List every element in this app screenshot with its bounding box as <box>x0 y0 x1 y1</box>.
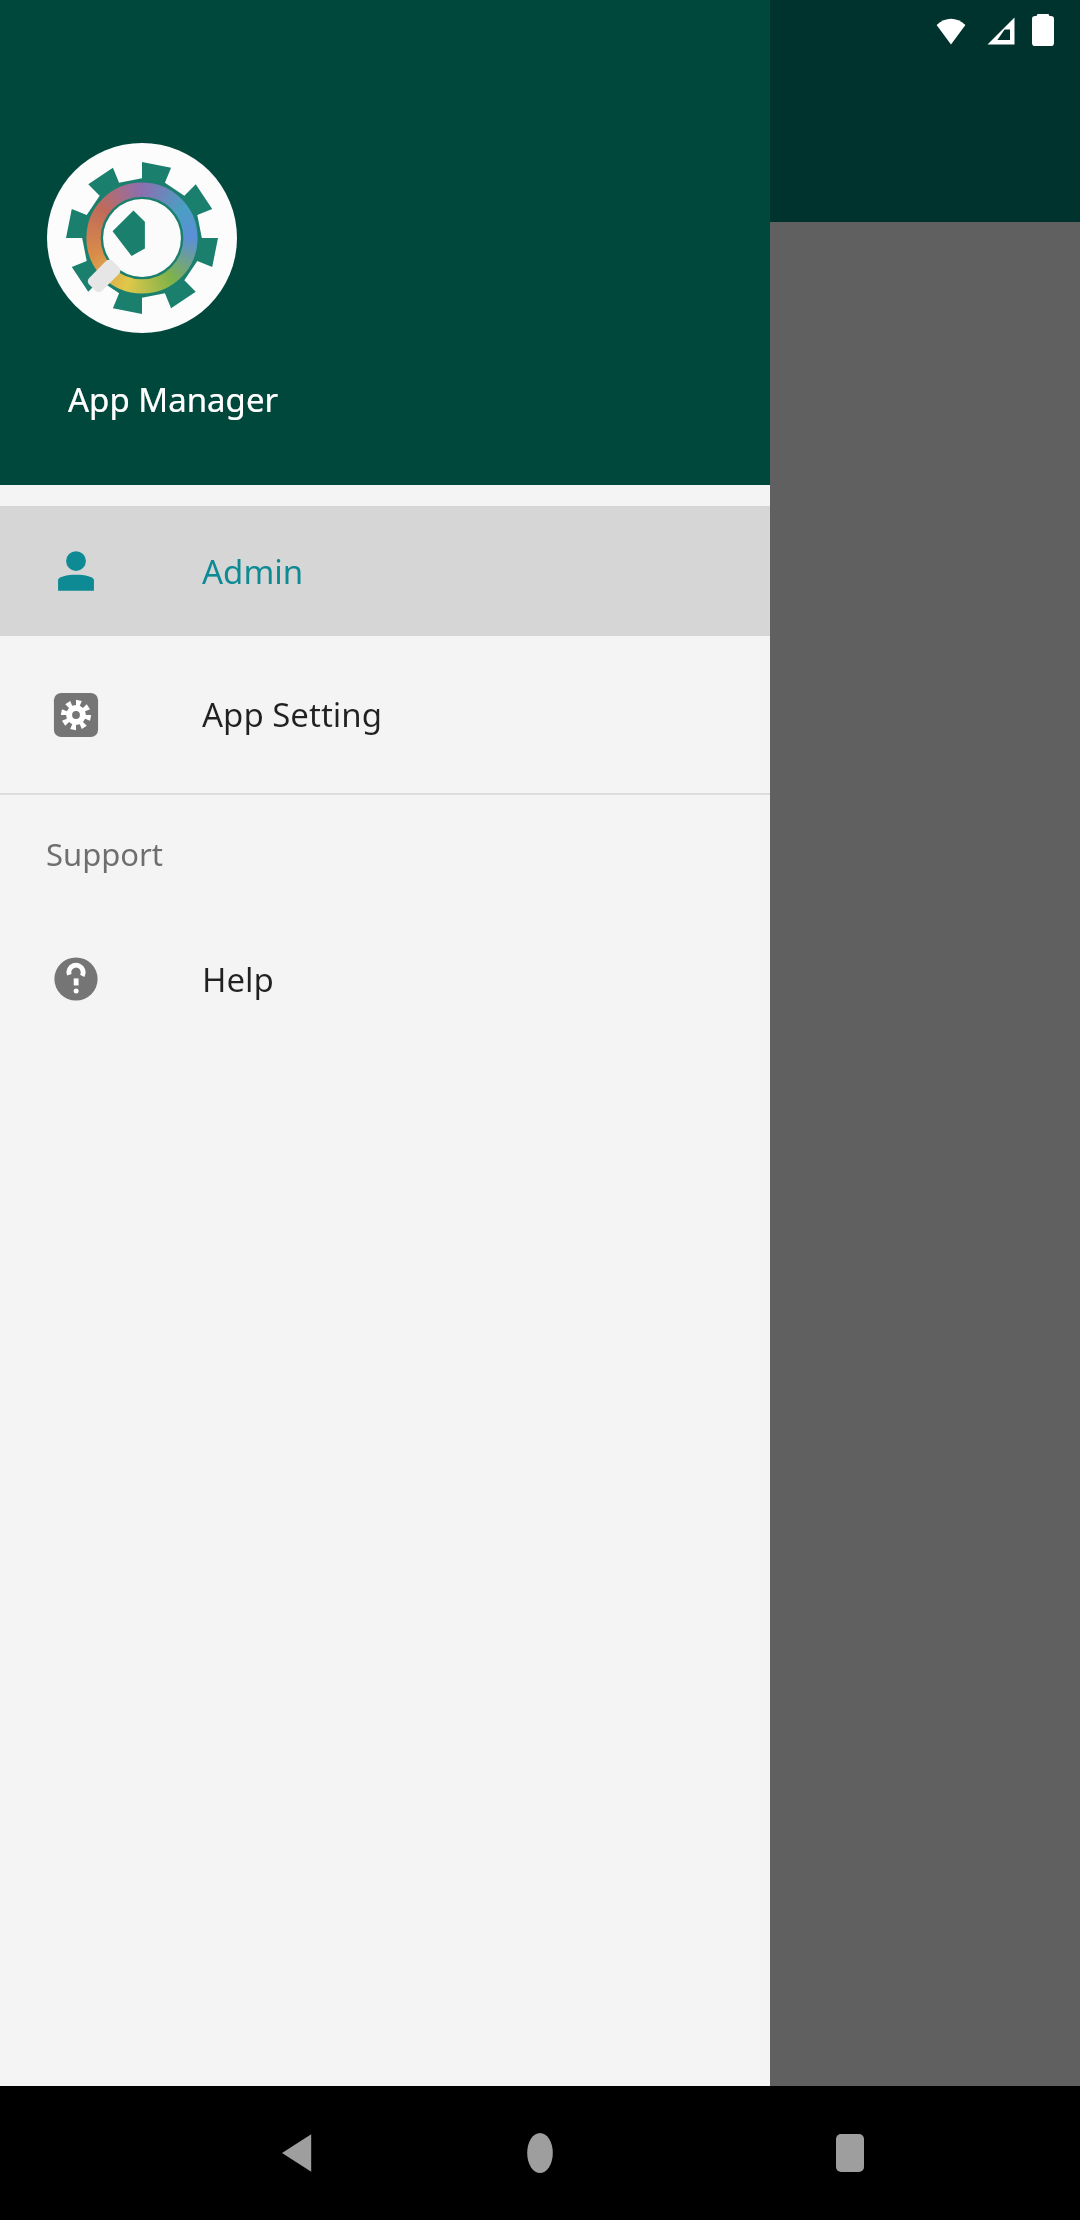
staticText: Support <box>46 833 164 875</box>
button[interactable]: Back <box>270 2123 330 2183</box>
staticText: App Manager <box>68 377 279 422</box>
staticText: Admin <box>202 549 304 594</box>
staticText: App Setting <box>202 692 383 737</box>
button[interactable]: Home <box>510 2123 570 2183</box>
staticText: Help <box>202 957 274 1002</box>
button[interactable]: Recent apps <box>820 2123 880 2183</box>
button[interactable]: Help <box>0 913 770 1045</box>
button[interactable]: App Setting <box>0 636 770 793</box>
button[interactable]: Admin <box>0 506 770 636</box>
